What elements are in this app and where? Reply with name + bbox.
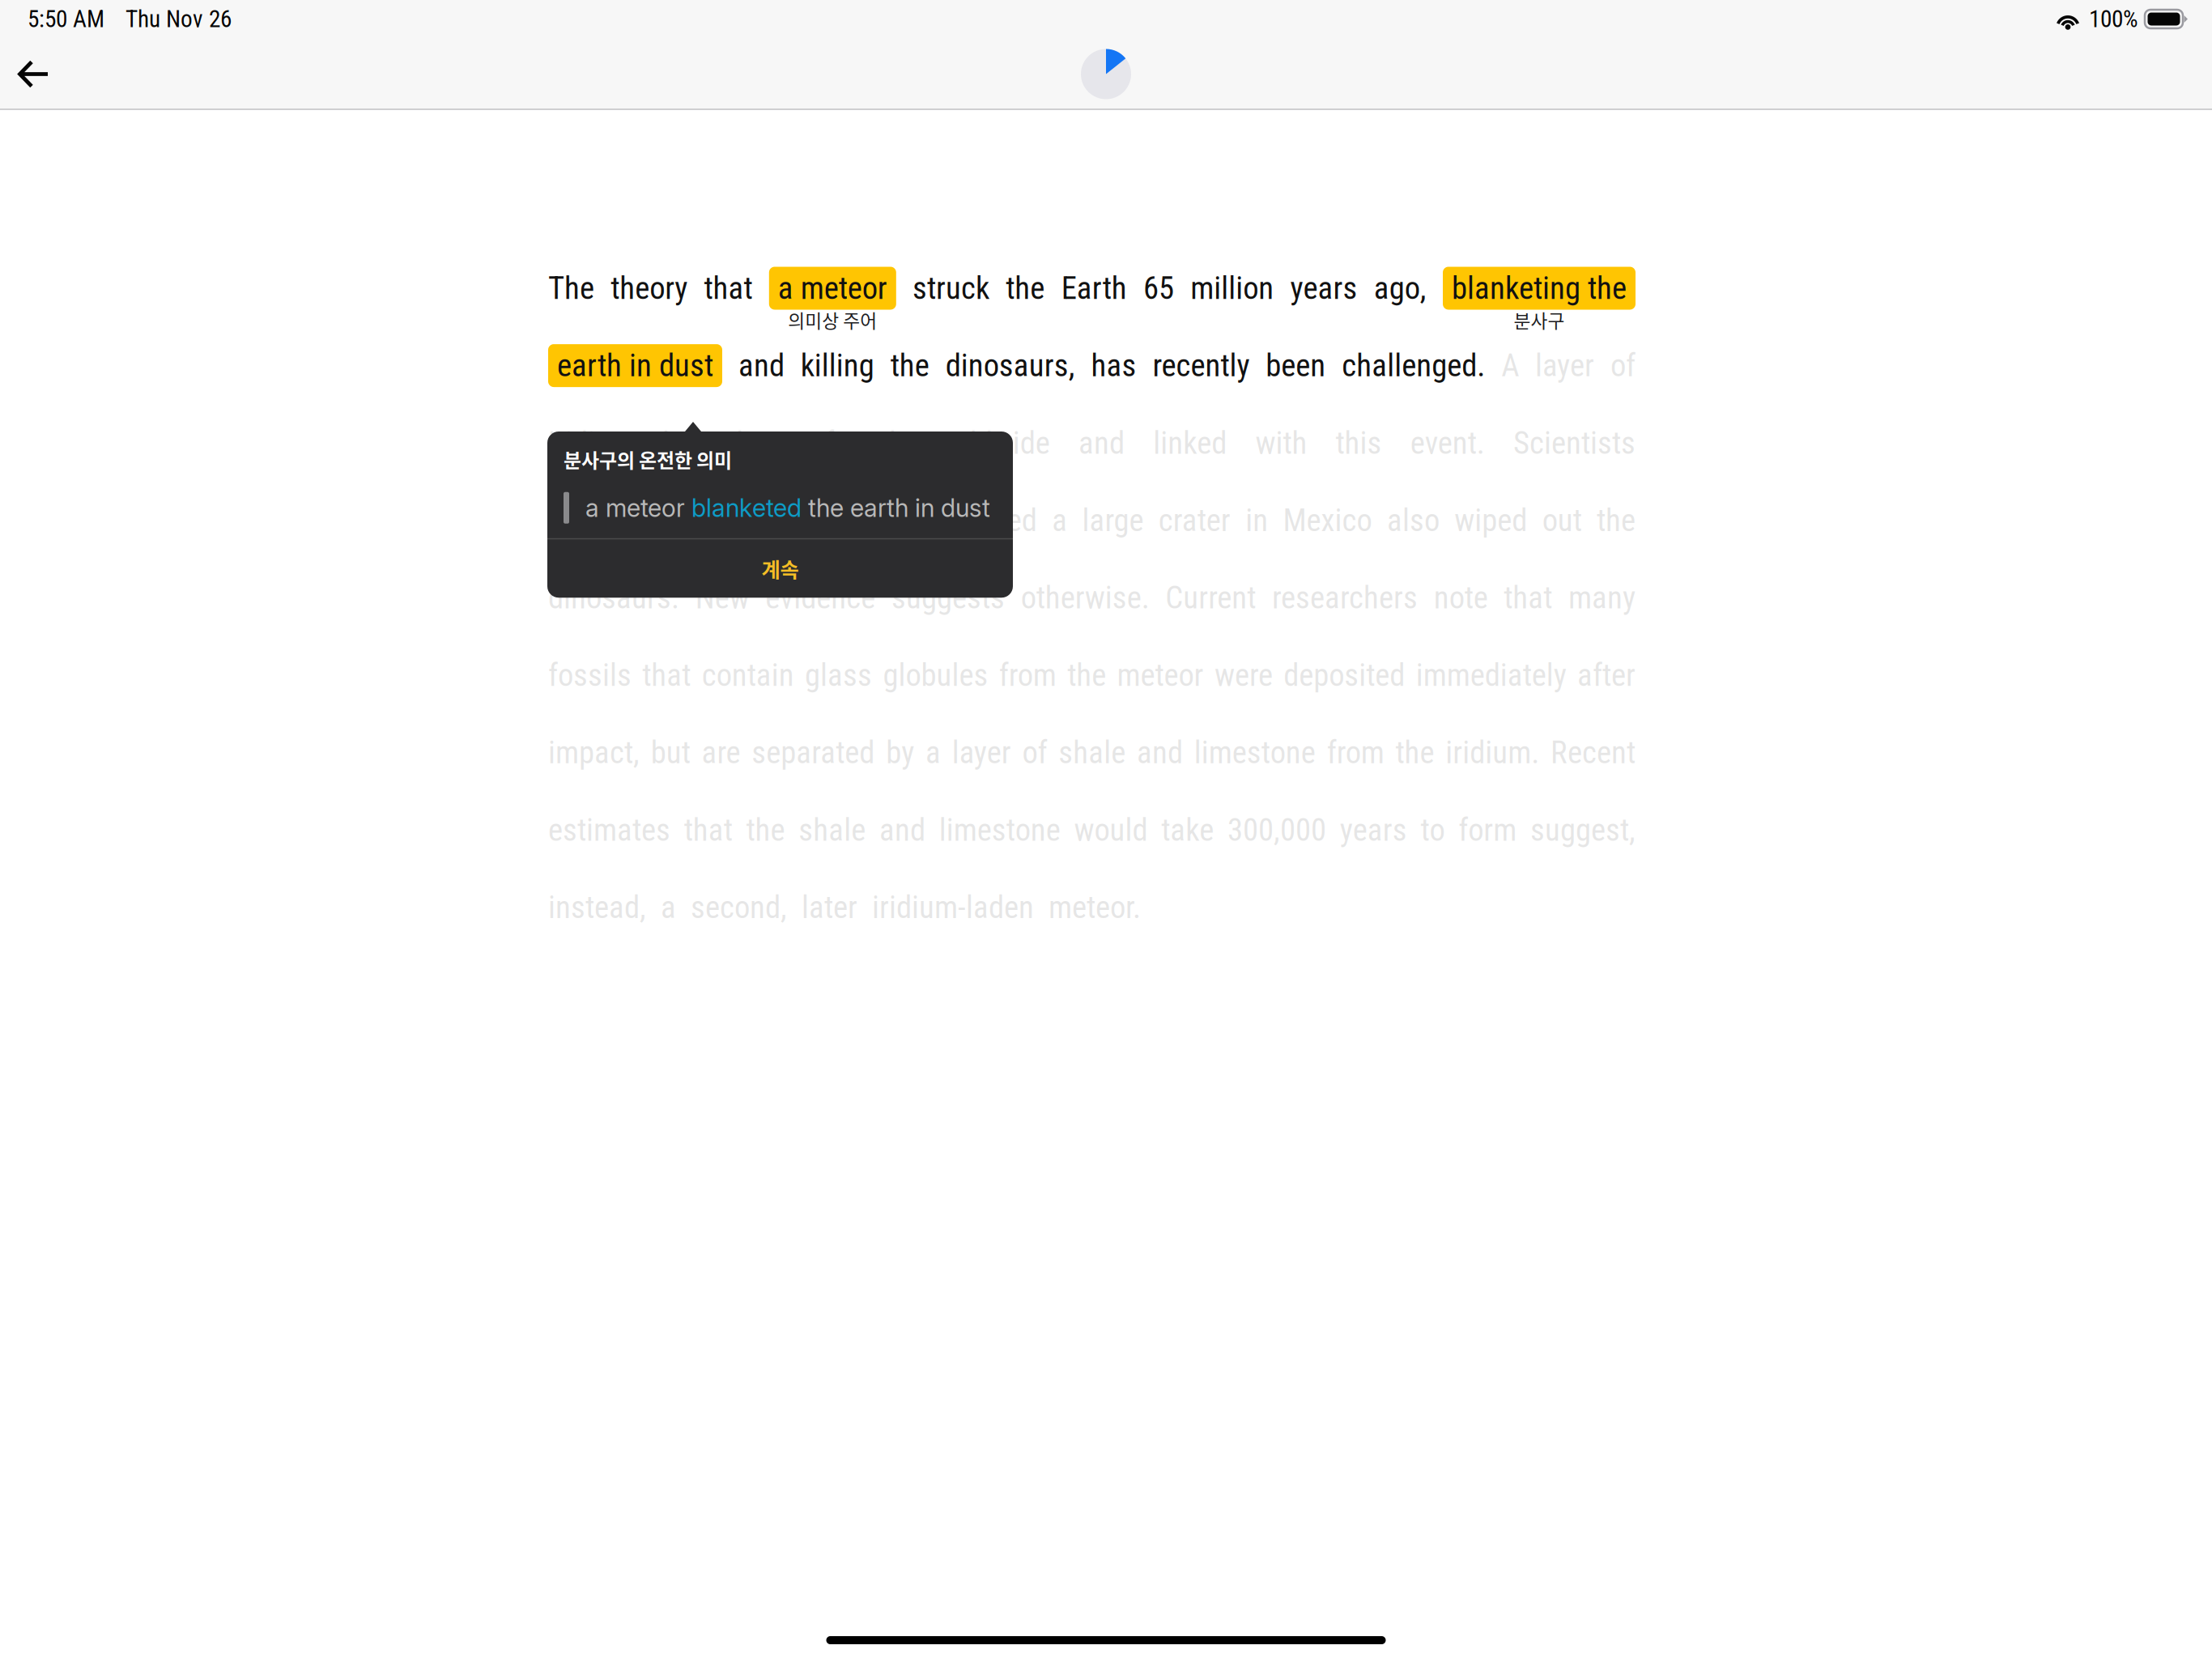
staticText: would <box>1074 812 1148 848</box>
staticText: New <box>695 579 750 616</box>
staticText: the <box>890 347 929 384</box>
staticText: layer <box>952 734 1011 771</box>
staticText: after <box>1577 657 1636 693</box>
staticText: estimates <box>548 812 670 848</box>
staticText: years <box>1340 812 1407 848</box>
staticText: note <box>1434 579 1488 616</box>
staticText: the <box>1395 734 1434 771</box>
staticText: has <box>1091 347 1136 384</box>
staticText: 300,000 <box>1227 812 1326 848</box>
staticText: been <box>736 425 796 461</box>
staticText: the earth in dust <box>802 493 990 523</box>
staticText: a <box>661 889 676 926</box>
staticText: Thu Nov 26 <box>125 5 232 33</box>
staticText: blanketing the <box>1452 270 1627 307</box>
staticText: researchers <box>1272 579 1418 616</box>
staticText: dinosaurs, <box>945 347 1075 384</box>
staticText: 분사구 <box>1514 307 1565 333</box>
button[interactable]: Listening progress <box>1081 49 1131 99</box>
staticText: form <box>1458 812 1517 848</box>
staticText: linked <box>1153 425 1227 461</box>
staticText: ago, <box>1374 270 1426 307</box>
staticText: Recent <box>1551 734 1636 771</box>
staticText: of <box>1022 734 1047 771</box>
staticText: immediately <box>1416 657 1566 693</box>
staticText: found <box>825 425 896 461</box>
staticText: were <box>1214 657 1273 693</box>
staticText: large <box>1082 502 1144 539</box>
staticText: otherwise. <box>1021 579 1149 616</box>
staticText: million <box>1190 270 1274 307</box>
staticText: earth in dust <box>557 347 713 384</box>
staticText: separated <box>752 734 875 771</box>
staticText: blanketed <box>691 493 802 523</box>
staticText: meteor. <box>1049 889 1141 926</box>
staticText: limestone <box>939 812 1060 848</box>
staticText: iridium-laden <box>872 889 1034 926</box>
staticText: to <box>1421 812 1445 848</box>
staticText: impact, <box>548 734 640 771</box>
staticText: worldwide <box>924 425 1050 461</box>
staticText: this <box>1336 425 1382 461</box>
staticText: deposited <box>1284 657 1405 693</box>
staticText: that <box>642 657 691 693</box>
staticText: a meteor <box>585 493 691 523</box>
staticText: the <box>746 812 785 848</box>
staticText: a meteor <box>778 270 887 307</box>
staticText: and <box>1137 734 1183 771</box>
staticText: wiped <box>1454 502 1527 539</box>
staticText: 의미상 주어 <box>788 307 877 333</box>
staticText: layer <box>1535 347 1594 384</box>
staticText: second, <box>691 889 787 926</box>
staticText: iridium. <box>1445 734 1539 771</box>
staticText: the <box>1597 502 1636 539</box>
staticText: globules <box>883 657 988 693</box>
staticText: that <box>884 502 932 539</box>
staticText: Current <box>1165 579 1256 616</box>
staticText: 계속 <box>761 554 799 583</box>
staticText: 65 <box>1143 270 1174 307</box>
staticText: but <box>651 734 690 771</box>
staticText: challenged. <box>1342 347 1485 384</box>
staticText: from <box>1327 734 1384 771</box>
staticText: suggests <box>891 579 1005 616</box>
staticText: limestone <box>1194 734 1316 771</box>
staticText: meteor <box>1117 657 1204 693</box>
staticText: and <box>1078 425 1125 461</box>
staticText: from <box>999 657 1056 693</box>
staticText: meteor <box>782 502 869 539</box>
staticText: are <box>702 734 741 771</box>
staticText: event. <box>1410 425 1485 461</box>
staticText: of <box>1610 347 1636 384</box>
staticText: that <box>665 502 714 539</box>
staticText: the <box>1067 657 1106 693</box>
staticText: also <box>1387 502 1440 539</box>
staticText: evidence <box>765 579 875 616</box>
staticText: caused <box>947 502 1037 539</box>
button[interactable]: Back <box>0 38 71 110</box>
staticText: shale <box>1058 734 1126 771</box>
staticText: killing <box>801 347 874 384</box>
staticText: 5:50 AM <box>28 5 104 33</box>
staticText: dinosaurs. <box>548 579 679 616</box>
staticText: crater <box>1159 502 1231 539</box>
staticText: in <box>1245 502 1268 539</box>
staticText: Earth <box>1061 270 1127 307</box>
staticText: Mexico <box>1283 502 1372 539</box>
staticText: struck <box>913 270 989 307</box>
staticText: instead, <box>548 889 646 926</box>
staticText: been <box>1266 347 1326 384</box>
staticText: take <box>1161 812 1214 848</box>
staticText: 100% <box>2089 5 2138 33</box>
staticText: a <box>1052 502 1067 539</box>
button[interactable]: 계속 <box>547 539 1013 598</box>
staticText: years <box>1290 270 1357 307</box>
staticText: out <box>1542 502 1582 539</box>
staticText: the <box>728 502 767 539</box>
staticText: later <box>802 889 857 926</box>
staticText: suggest, <box>1530 812 1636 848</box>
staticText: contain <box>702 657 794 693</box>
staticText: that <box>704 270 753 307</box>
staticText: theory <box>611 270 688 307</box>
staticText: believed <box>548 502 650 539</box>
